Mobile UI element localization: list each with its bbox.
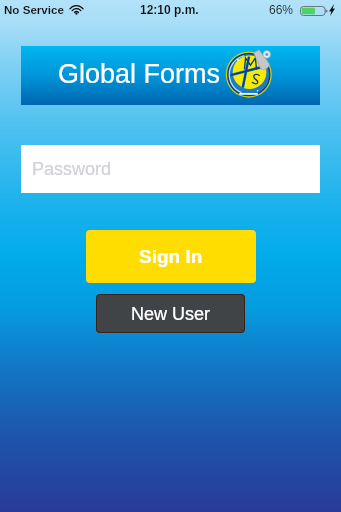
other: Battery 66 percent: [300, 6, 328, 16]
staticText: No Service: [4, 3, 64, 16]
staticText: New User: [131, 304, 211, 324]
staticText: Sign In: [139, 246, 203, 267]
other: Charging: [329, 4, 335, 16]
staticText: Global Forms: [58, 59, 221, 89]
staticText: Password: [32, 159, 112, 179]
staticText: 66%: [269, 3, 294, 16]
button[interactable]: Sign In: [86, 230, 256, 283]
button[interactable]: New User: [97, 295, 244, 332]
button[interactable]: Password: [21, 145, 320, 193]
staticText: 12:10 p.m.: [140, 3, 199, 16]
other: Wi-Fi signal: [70, 5, 83, 14]
